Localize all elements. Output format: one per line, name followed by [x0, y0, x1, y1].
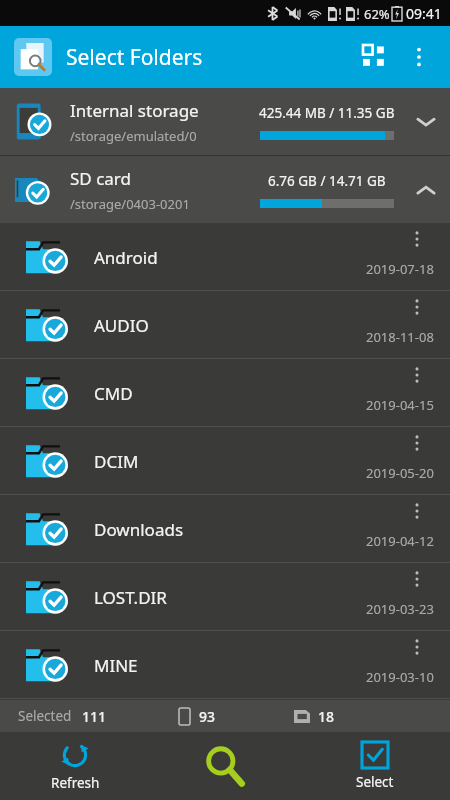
staticText: /storage/0403-0201	[70, 195, 190, 213]
staticText: DCIM	[94, 450, 139, 473]
button[interactable]: More options for CMD	[400, 359, 434, 391]
button[interactable]: Android	[0, 223, 450, 291]
button[interactable]: CMD	[0, 359, 450, 427]
staticText: 2019-04-12	[366, 532, 434, 550]
staticText: MINE	[94, 654, 138, 677]
staticText: AUDIO	[94, 314, 149, 337]
staticText: Selected	[18, 707, 72, 725]
staticText: Refresh	[51, 774, 100, 792]
staticText: SD card	[70, 167, 131, 190]
staticText: 09:41	[406, 4, 442, 23]
staticText: 6.76 GB / 14.71 GB	[268, 172, 386, 190]
button[interactable]: Downloads	[0, 495, 450, 563]
button[interactable]: Collapse	[402, 156, 450, 223]
staticText: 18	[318, 707, 335, 726]
staticText: Internal storage	[70, 99, 199, 122]
button[interactable]: More options for MINE	[400, 631, 434, 663]
staticText: 2019-03-10	[366, 668, 434, 686]
button[interactable]: Search	[150, 732, 300, 800]
button[interactable]: More options for Android	[400, 223, 434, 255]
staticText: Select	[356, 773, 394, 791]
button[interactable]: AUDIO	[0, 291, 450, 359]
staticText: 2018-11-08	[366, 328, 434, 346]
button[interactable]: More options for Downloads	[400, 495, 434, 527]
staticText: /storage/emulated/0	[70, 127, 197, 145]
button[interactable]: Refresh	[0, 732, 150, 800]
button[interactable]: Internal storage	[0, 88, 450, 155]
button[interactable]: Grid view	[352, 34, 398, 80]
button[interactable]: More options for AUDIO	[400, 291, 434, 323]
button[interactable]: Expand	[402, 88, 450, 155]
button[interactable]: More options for LOST.DIR	[400, 563, 434, 595]
button[interactable]: LOST.DIR	[0, 563, 450, 631]
button[interactable]: More options	[398, 36, 440, 78]
staticText: 2019-03-23	[366, 600, 434, 618]
staticText: LOST.DIR	[94, 586, 167, 609]
staticText: Select Folders	[66, 43, 203, 72]
staticText: Downloads	[94, 518, 184, 541]
staticText: 2019-04-15	[366, 396, 434, 414]
button[interactable]: SD card	[0, 156, 450, 223]
staticText: 93	[199, 707, 216, 726]
staticText: 2019-05-20	[366, 464, 434, 482]
button[interactable]: More options for DCIM	[400, 427, 434, 459]
button[interactable]: MINE	[0, 631, 450, 699]
staticText: Android	[94, 246, 158, 269]
staticText: 2019-07-18	[366, 260, 434, 278]
staticText: CMD	[94, 382, 133, 405]
button[interactable]: DCIM	[0, 427, 450, 495]
staticText: 62%	[364, 5, 390, 23]
staticText: 111	[82, 707, 107, 726]
staticText: 425.44 MB / 11.35 GB	[259, 104, 395, 122]
button[interactable]: Select	[300, 732, 450, 800]
